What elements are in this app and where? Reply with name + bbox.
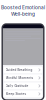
button[interactable]: Daily Gratitude [4, 82, 42, 89]
button[interactable]: Mindful Moments [4, 74, 42, 81]
staticText: Mindful Moments [6, 76, 34, 80]
button[interactable]: Sleep Stories [4, 90, 42, 97]
staticText: Boosted Emotional [1, 4, 45, 10]
staticText: Guided Breathing [6, 68, 33, 72]
staticText: Daily Gratitude [6, 84, 29, 88]
staticText: Well-being [11, 11, 35, 17]
button[interactable]: Guided Breathing [4, 66, 42, 73]
staticText: Sleep Stories [6, 92, 27, 96]
